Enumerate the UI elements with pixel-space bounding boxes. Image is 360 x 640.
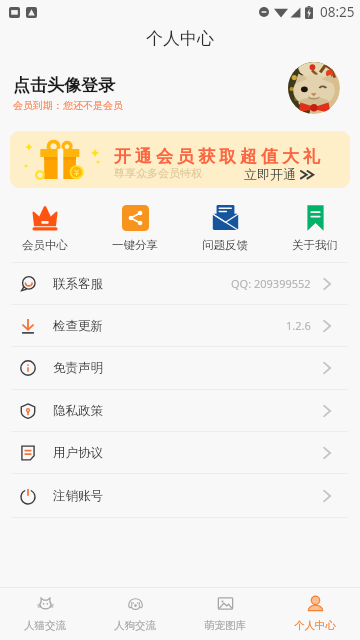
staticText: 开通会员获取超值大礼 <box>112 146 322 167</box>
staticText: 人狗交流 <box>114 619 156 632</box>
staticText: 个人中心 <box>146 28 214 49</box>
staticText: 立即开通 <box>244 166 296 182</box>
staticText: 隐私政策 <box>53 403 103 419</box>
staticText: 萌宠图库 <box>204 619 246 632</box>
button[interactable]: 问题反馈 <box>180 205 270 255</box>
staticText: 人猫交流 <box>24 619 66 632</box>
button[interactable]: 开通会员获取超值大礼 <box>10 131 350 188</box>
staticText: 注销账号 <box>53 488 103 504</box>
staticText: 用户协议 <box>53 445 103 461</box>
staticText: 一键分享 <box>112 238 158 252</box>
button[interactable]: 人狗交流 <box>90 588 180 640</box>
staticText: 联系客服 <box>53 276 103 292</box>
button[interactable]: 关于我们 <box>270 205 360 255</box>
button[interactable]: 联系客服 <box>0 263 360 304</box>
staticText: 1.2.6 <box>286 318 311 333</box>
button[interactable]: 人猫交流 <box>0 588 90 640</box>
button[interactable]: 头像登录 <box>288 62 340 114</box>
staticText: 免责声明 <box>53 360 103 376</box>
button[interactable]: 免责声明 <box>0 347 360 389</box>
button[interactable]: 用户协议 <box>0 432 360 473</box>
staticText: 问题反馈 <box>202 238 248 252</box>
staticText: 会员到期：您还不是会员 <box>13 99 123 112</box>
button[interactable]: 隐私政策 <box>0 390 360 431</box>
staticText: 关于我们 <box>292 238 338 252</box>
button[interactable]: 会员中心 <box>0 205 90 255</box>
button[interactable]: 检查更新 <box>0 305 360 346</box>
staticText: 08:25 <box>320 3 355 21</box>
staticText: QQ: 209399552 <box>231 276 311 291</box>
staticText: 检查更新 <box>53 318 103 334</box>
button[interactable]: 个人中心 <box>270 588 360 640</box>
staticText: 点击头像登录 <box>13 75 115 96</box>
staticText: 个人中心 <box>294 619 336 632</box>
staticText: 会员中心 <box>22 238 68 252</box>
staticText: 尊享众多会员特权 <box>114 166 202 180</box>
button[interactable]: 一键分享 <box>90 205 180 255</box>
button[interactable]: 点击头像登录 <box>0 52 360 115</box>
button[interactable]: 注销账号 <box>0 474 360 517</box>
button[interactable]: 萌宠图库 <box>180 588 270 640</box>
